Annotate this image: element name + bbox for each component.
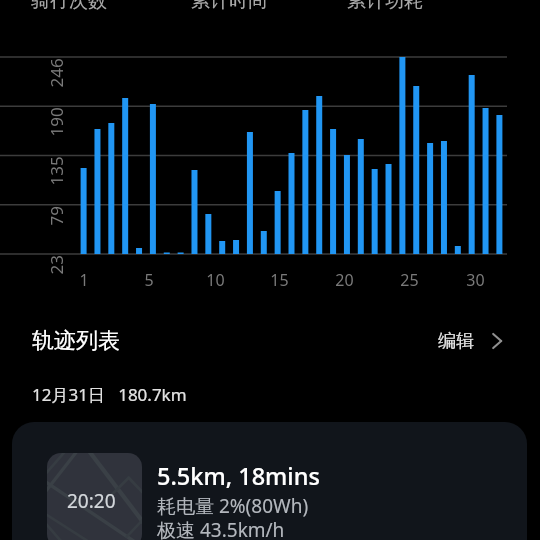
staticText: 30: [466, 269, 485, 291]
staticText: 135: [44, 155, 67, 185]
staticText: 5.5km, 18mins: [157, 460, 320, 492]
staticText: 25: [400, 269, 419, 291]
staticText: 20:20: [67, 488, 116, 514]
staticText: 累计时间: [191, 0, 267, 13]
button[interactable]: 骑行次数: [9, 0, 129, 13]
staticText: 编辑: [438, 330, 474, 353]
staticText: 极速 43.5km/h: [157, 517, 285, 540]
other: More: [492, 333, 502, 349]
staticText: 15: [270, 269, 289, 291]
staticText: 23: [44, 254, 67, 274]
staticText: 190: [44, 106, 67, 136]
staticText: 79: [44, 205, 67, 225]
staticText: 轨迹列表: [32, 327, 120, 355]
staticText: 骑行次数: [31, 0, 107, 13]
button[interactable]: 累计功耗: [325, 0, 445, 13]
staticText: 20: [335, 269, 354, 291]
staticText: 12月31日 180.7km: [32, 383, 187, 406]
staticText: 1: [79, 269, 89, 291]
button[interactable]: 累计时间: [169, 0, 289, 13]
button[interactable]: 20:20: [12, 422, 527, 540]
staticText: 10: [206, 269, 225, 291]
staticText: 246: [44, 57, 67, 87]
staticText: 5: [144, 269, 154, 291]
staticText: 耗电量 2%(80Wh): [157, 493, 309, 519]
button[interactable]: 轨迹列表: [0, 316, 540, 366]
staticText: 累计功耗: [347, 0, 423, 13]
